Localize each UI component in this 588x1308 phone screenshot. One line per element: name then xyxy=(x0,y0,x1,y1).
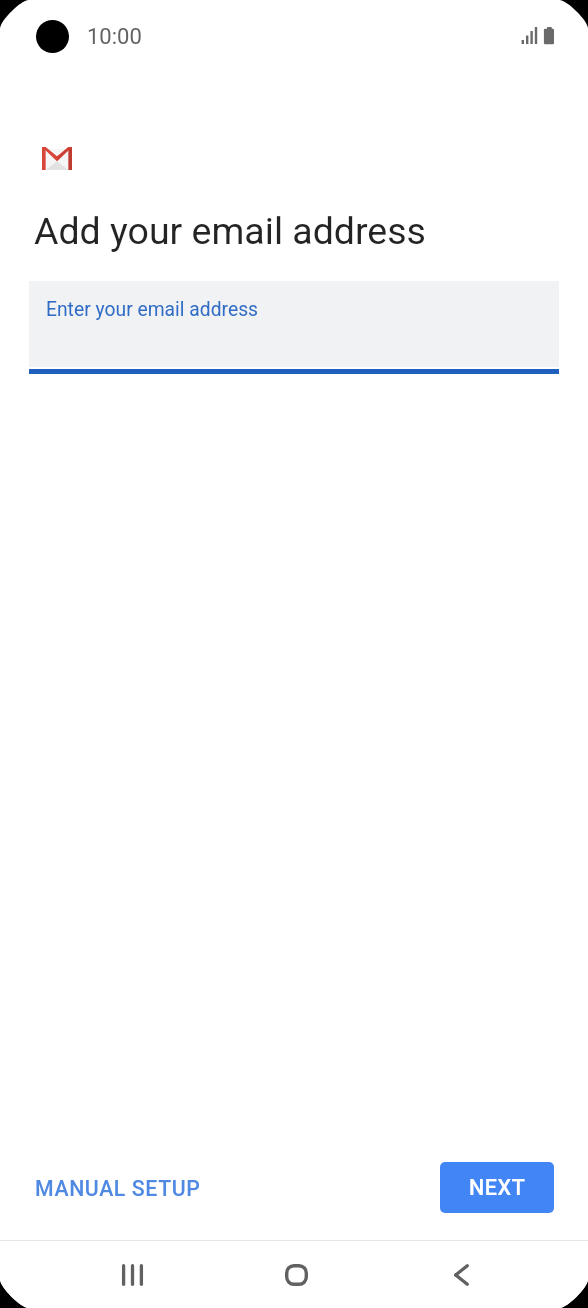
staticText: MANUAL SETUP xyxy=(35,1176,201,1199)
button[interactable]: Enter your email address xyxy=(29,281,559,372)
staticText: Enter your email address xyxy=(46,298,259,321)
button[interactable]: Home xyxy=(264,1241,328,1308)
staticText: Add your email address xyxy=(34,209,426,253)
staticText: NEXT xyxy=(469,1175,526,1200)
button[interactable]: MANUAL SETUP xyxy=(21,1162,215,1213)
staticText: 10:00 xyxy=(87,24,142,50)
button[interactable]: Recent apps xyxy=(100,1241,164,1308)
button[interactable]: Back xyxy=(429,1241,493,1308)
button[interactable]: NEXT xyxy=(440,1162,554,1213)
